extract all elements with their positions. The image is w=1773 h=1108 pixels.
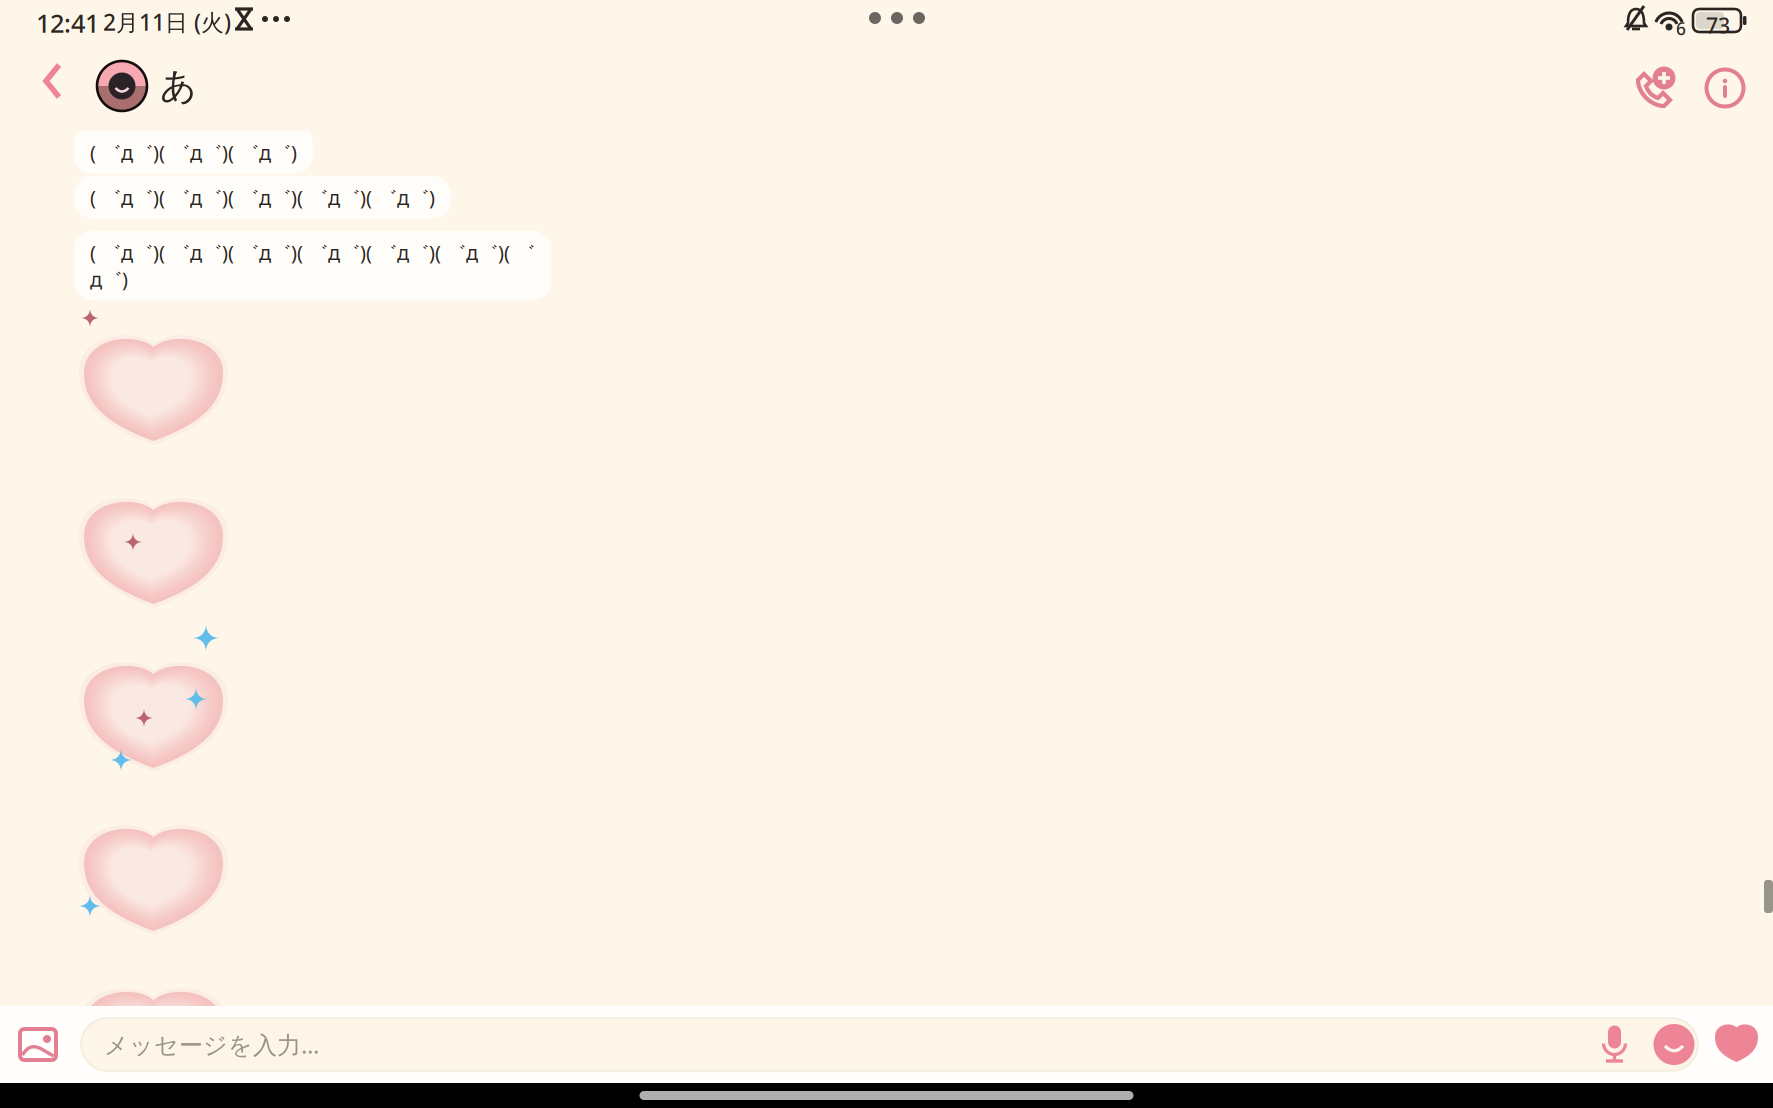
button[interactable]: Info xyxy=(1695,58,1755,118)
button[interactable]: あ xyxy=(96,52,207,120)
staticText: 2月11日 (火) xyxy=(103,7,231,37)
staticText: ( ゛д゛)( ゛д゛)( ゛д゛) xyxy=(90,139,297,166)
staticText: 6 xyxy=(1676,17,1686,40)
staticText: ( ゛д゛)( ゛д゛)( ゛д゛)( ゛д゛)( ゛д゛) xyxy=(90,184,435,211)
button[interactable]: Send heart xyxy=(1710,1018,1763,1071)
staticText: 73 xyxy=(1706,11,1730,39)
button[interactable]: Emoji xyxy=(1652,1022,1696,1066)
button[interactable]: Voice message xyxy=(1594,1018,1636,1070)
button[interactable]: Photos xyxy=(11,1020,65,1069)
staticText: メッセージを入力... xyxy=(104,1029,319,1060)
button[interactable]: Back xyxy=(26,44,80,118)
button[interactable]: Call xyxy=(1626,56,1686,120)
staticText: ( ゛д゛)( ゛д゛)( ゛д゛)( ゛д゛)( ゛д゛)( ゛д゛)( ゛ … xyxy=(90,239,535,292)
staticText: 12:41 xyxy=(36,6,99,40)
staticText: あ xyxy=(160,64,197,108)
